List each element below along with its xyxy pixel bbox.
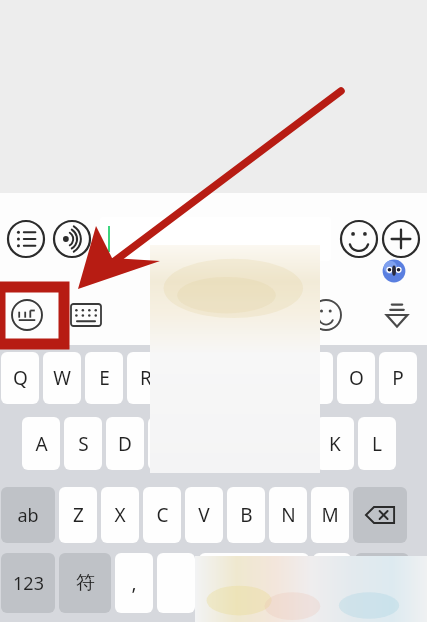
button[interactable]: Menu	[6, 219, 46, 259]
button[interactable]: E	[85, 352, 123, 404]
button[interactable]: Hide keyboard	[377, 297, 417, 333]
button[interactable]: S	[64, 417, 102, 470]
staticText: M	[321, 502, 339, 528]
button[interactable]: X	[101, 487, 139, 543]
staticText: P	[392, 365, 404, 391]
button[interactable]: I	[295, 352, 333, 404]
button[interactable]: D	[106, 417, 144, 470]
button[interactable]: C	[143, 487, 181, 543]
button[interactable]: Z	[59, 487, 97, 543]
staticText: K	[329, 431, 341, 457]
button[interactable]: L	[358, 417, 396, 470]
button[interactable]: Add	[381, 219, 421, 259]
staticText: Z	[73, 502, 84, 528]
staticText: C	[156, 502, 169, 528]
staticText: Q	[13, 365, 28, 391]
button[interactable]: M	[311, 487, 349, 543]
button[interactable]	[100, 217, 331, 261]
staticText: L	[372, 431, 382, 457]
button[interactable]: Stickers	[309, 298, 343, 332]
button[interactable]: Input method	[10, 298, 44, 332]
staticText: E	[99, 365, 110, 391]
button[interactable]: N	[269, 487, 307, 543]
button[interactable]	[355, 553, 409, 613]
button[interactable]: B	[227, 487, 265, 543]
button[interactable]: Emoji	[339, 219, 379, 259]
button[interactable]: W	[43, 352, 81, 404]
staticText: 123	[13, 571, 44, 596]
button[interactable]	[199, 553, 309, 613]
button[interactable]: A	[22, 417, 60, 470]
button[interactable]: 符	[59, 553, 111, 613]
staticText: 符	[76, 571, 95, 595]
button[interactable]: R	[127, 352, 165, 404]
staticText: N	[281, 502, 296, 528]
staticText: D	[118, 431, 132, 457]
button[interactable]: 123	[1, 553, 55, 613]
button[interactable]	[313, 553, 351, 613]
staticText: ,	[131, 570, 137, 596]
button[interactable]: ,	[115, 553, 153, 613]
staticText: S	[78, 431, 89, 457]
staticText: A	[35, 431, 48, 457]
button[interactable]: V	[185, 487, 223, 543]
staticText: ab	[17, 503, 39, 528]
button[interactable]: Keyboard layout	[66, 298, 106, 332]
button[interactable]: P	[379, 352, 417, 404]
staticText: X	[114, 502, 126, 528]
staticText: R	[140, 365, 152, 391]
staticText: V	[198, 502, 210, 528]
staticText: O	[349, 365, 364, 391]
button[interactable]: O	[337, 352, 375, 404]
button[interactable]: ab	[1, 487, 55, 543]
staticText: W	[53, 365, 71, 391]
staticText: B	[240, 502, 253, 528]
button[interactable]: Q	[1, 352, 39, 404]
button[interactable]: Backspace	[353, 487, 407, 543]
button[interactable]: K	[316, 417, 354, 470]
button[interactable]: Voice input	[52, 219, 92, 259]
button[interactable]	[157, 553, 195, 613]
